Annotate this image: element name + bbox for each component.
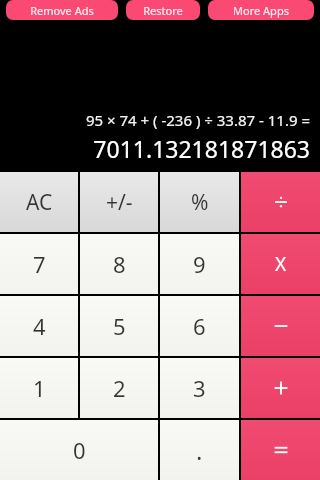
button[interactable]: 0 <box>0 420 158 480</box>
staticText: 6 <box>193 311 206 341</box>
staticText: 9 <box>193 249 206 279</box>
button[interactable]: Plus <box>241 358 320 418</box>
staticText: AC <box>26 188 53 217</box>
button[interactable]: 2 <box>80 358 158 418</box>
button[interactable]: Restore <box>126 0 200 20</box>
staticText: X <box>275 251 287 277</box>
button[interactable]: 7 <box>0 234 78 294</box>
button[interactable]: Equals <box>241 420 320 480</box>
staticText: 0 <box>73 435 86 465</box>
button[interactable]: 1 <box>0 358 78 418</box>
button[interactable]: Divide <box>241 172 320 232</box>
staticText: 3 <box>193 373 206 403</box>
staticText: 95 × 74 + ( -236 ) ÷ 33.87 - 11.9 = <box>0 110 310 130</box>
button[interactable]: X <box>241 234 320 294</box>
button[interactable]: Minus <box>241 296 320 356</box>
staticText: Restore <box>143 3 183 18</box>
staticText: 8 <box>113 249 126 279</box>
staticText: More Apps <box>233 3 289 18</box>
button[interactable]: More Apps <box>208 0 314 20</box>
button[interactable]: . <box>160 420 239 480</box>
button[interactable]: 3 <box>160 358 239 418</box>
button[interactable]: 5 <box>80 296 158 356</box>
staticText: 4 <box>33 311 46 341</box>
button[interactable]: AC <box>0 172 78 232</box>
button[interactable]: 4 <box>0 296 78 356</box>
button[interactable]: % <box>160 172 239 232</box>
staticText: 7011.132181871863 <box>0 133 310 164</box>
staticText: +/- <box>106 188 133 217</box>
staticText: . <box>196 434 203 467</box>
button[interactable]: 9 <box>160 234 239 294</box>
staticText: 1 <box>33 373 46 403</box>
button[interactable]: +/- <box>80 172 158 232</box>
button[interactable]: 8 <box>80 234 158 294</box>
staticText: 5 <box>113 311 126 341</box>
staticText: Remove Ads <box>30 3 94 18</box>
staticText: % <box>191 188 209 217</box>
staticText: 7 <box>33 249 46 279</box>
button[interactable]: Remove Ads <box>6 0 118 20</box>
staticText: 2 <box>113 373 126 403</box>
button[interactable]: 6 <box>160 296 239 356</box>
